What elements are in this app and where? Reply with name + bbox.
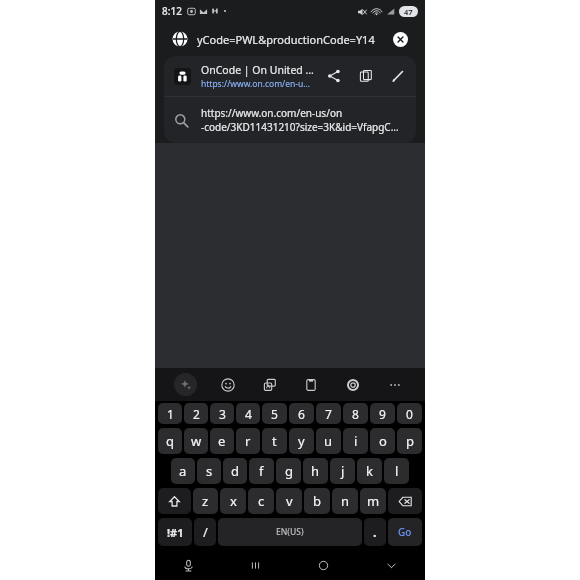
button[interactable]: s <box>197 458 221 484</box>
button[interactable]: l <box>384 458 409 484</box>
button[interactable]: Share <box>324 66 344 86</box>
button[interactable]: / <box>194 518 216 546</box>
button[interactable]: w <box>184 428 208 454</box>
staticText: 5 <box>271 406 278 422</box>
button[interactable]: 5 <box>262 403 287 424</box>
staticText: o <box>379 432 387 450</box>
staticText: 8 <box>352 406 359 422</box>
button[interactable]: Go <box>388 518 422 546</box>
staticText: -code/3KD11431210?size=3K&id=VfapgC... <box>201 120 399 134</box>
staticText: w <box>191 432 202 450</box>
button[interactable]: g <box>276 458 301 484</box>
button[interactable]: r <box>236 428 260 454</box>
button[interactable]: b <box>304 488 330 514</box>
staticText: 7 <box>325 406 332 422</box>
button[interactable]: Emoji <box>216 373 239 396</box>
staticText: !#1 <box>167 525 184 540</box>
staticText: / <box>203 523 208 541</box>
button[interactable]: j <box>330 458 355 484</box>
button[interactable]: m <box>360 488 386 514</box>
staticText: yCode=PWL&productionCode=Y14 <box>197 32 387 47</box>
button[interactable]: Copy <box>356 66 376 86</box>
staticText: i <box>354 432 358 450</box>
button[interactable]: Search <box>164 97 416 143</box>
button[interactable]: Backspace <box>388 488 422 514</box>
staticText: d <box>231 462 239 480</box>
staticText: q <box>166 432 174 450</box>
staticText: y <box>298 432 305 450</box>
button[interactable]: Home <box>289 550 357 580</box>
staticText: Go <box>398 525 412 539</box>
staticText: https://www.on.com/en-us/on <box>201 106 343 120</box>
button[interactable]: q <box>158 428 182 454</box>
button[interactable]: k <box>357 458 382 484</box>
staticText: k <box>366 462 373 480</box>
staticText: p <box>406 432 414 450</box>
staticText: r <box>245 432 251 450</box>
staticText: j <box>341 462 345 480</box>
button[interactable]: p <box>397 428 422 454</box>
button[interactable]: o <box>370 428 395 454</box>
button[interactable]: Hide keyboard <box>357 550 425 580</box>
button[interactable]: Settings <box>341 373 364 396</box>
button[interactable]: d <box>223 458 247 484</box>
button[interactable]: n <box>332 488 358 514</box>
button[interactable]: Edit <box>388 66 408 86</box>
button[interactable]: OnCode | On United ... <box>164 56 416 96</box>
button[interactable]: v <box>276 488 302 514</box>
button[interactable]: x <box>220 488 246 514</box>
button[interactable]: Recent apps <box>222 550 289 580</box>
button[interactable]: . <box>364 518 386 546</box>
staticText: https://www.on.com/en-u... <box>201 78 311 90</box>
button[interactable]: 0 <box>397 403 422 424</box>
button[interactable]: t <box>262 428 287 454</box>
staticText: v <box>286 492 293 510</box>
button[interactable]: e <box>210 428 234 454</box>
staticText: h <box>311 462 320 480</box>
staticText: a <box>179 462 187 480</box>
button[interactable]: i <box>343 428 368 454</box>
staticText: e <box>218 432 226 450</box>
staticText: b <box>313 492 321 510</box>
button[interactable]: a <box>171 458 195 484</box>
button[interactable]: AI assist <box>174 373 197 396</box>
button[interactable]: 3 <box>210 403 234 424</box>
staticText: 0 <box>406 406 413 422</box>
staticText: u <box>324 432 333 450</box>
staticText: f <box>259 462 264 480</box>
button[interactable]: yCode=PWL&productionCode=Y14 <box>164 25 416 53</box>
staticText: OnCode | On United ... <box>201 63 314 77</box>
button[interactable]: Translate <box>258 373 281 396</box>
button[interactable]: Shift <box>158 488 191 514</box>
staticText: . <box>373 523 377 541</box>
button[interactable]: 2 <box>184 403 208 424</box>
staticText: l <box>395 462 399 480</box>
button[interactable]: u <box>316 428 341 454</box>
staticText: 1 <box>167 406 174 422</box>
button[interactable]: 9 <box>370 403 395 424</box>
button[interactable]: More options <box>383 373 406 396</box>
button[interactable]: f <box>249 458 274 484</box>
button[interactable]: 7 <box>316 403 341 424</box>
staticText: z <box>202 492 209 510</box>
button[interactable]: c <box>248 488 274 514</box>
button[interactable]: !#1 <box>158 518 192 546</box>
staticText: 47 <box>404 7 413 17</box>
button[interactable]: y <box>289 428 314 454</box>
button[interactable]: Voice input <box>155 550 222 580</box>
staticText: 6 <box>298 406 305 422</box>
button[interactable]: 6 <box>289 403 314 424</box>
button[interactable]: h <box>303 458 328 484</box>
staticText: 9 <box>379 406 386 422</box>
staticText: 8:12 <box>162 4 182 18</box>
button[interactable]: z <box>193 488 218 514</box>
button[interactable]: Clipboard <box>299 373 322 396</box>
staticText: n <box>341 492 350 510</box>
staticText: t <box>272 432 277 450</box>
button[interactable]: Clear <box>393 32 408 47</box>
button[interactable]: 1 <box>158 403 182 424</box>
button[interactable]: 4 <box>236 403 260 424</box>
button[interactable]: 8 <box>343 403 368 424</box>
other: Search <box>174 113 189 128</box>
button[interactable]: EN(US) <box>218 518 362 546</box>
